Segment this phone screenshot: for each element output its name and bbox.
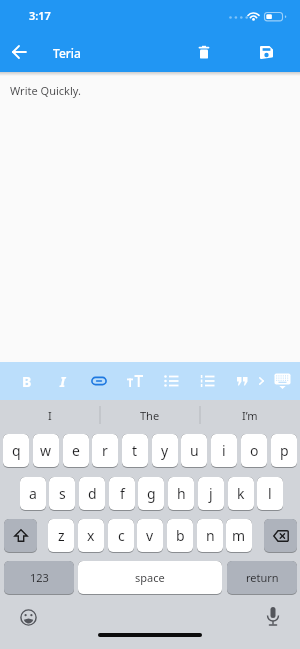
button[interactable]: k bbox=[228, 477, 254, 511]
button[interactable] bbox=[81, 362, 117, 400]
button[interactable] bbox=[12, 601, 44, 633]
button[interactable]: l bbox=[257, 477, 283, 511]
button[interactable]: e bbox=[63, 434, 89, 468]
staticText: f bbox=[120, 484, 125, 503]
button[interactable]: u bbox=[181, 434, 207, 468]
button[interactable]: space bbox=[78, 561, 222, 595]
button[interactable] bbox=[250, 36, 282, 68]
staticText: d bbox=[88, 484, 97, 503]
button[interactable]: q bbox=[3, 434, 29, 468]
button[interactable] bbox=[266, 362, 298, 400]
button[interactable]: r bbox=[92, 434, 118, 468]
button[interactable]: I bbox=[45, 362, 81, 400]
staticText: l bbox=[268, 484, 272, 503]
button[interactable]: d bbox=[79, 477, 105, 511]
button[interactable]: a bbox=[20, 477, 46, 511]
staticText: space bbox=[135, 570, 165, 585]
button[interactable]: g bbox=[138, 477, 164, 511]
staticText: return bbox=[246, 570, 279, 585]
button[interactable] bbox=[264, 519, 297, 553]
button[interactable]: s bbox=[49, 477, 75, 511]
button[interactable] bbox=[189, 362, 225, 400]
button[interactable]: n bbox=[197, 519, 223, 553]
button[interactable]: o bbox=[241, 434, 267, 468]
staticText: a bbox=[29, 484, 37, 503]
staticText: m bbox=[232, 526, 246, 545]
button[interactable] bbox=[257, 601, 289, 633]
button[interactable]: f bbox=[109, 477, 135, 511]
button[interactable]: I bbox=[0, 400, 100, 430]
button[interactable]: return bbox=[227, 561, 297, 595]
staticText: 123 bbox=[30, 570, 49, 585]
button[interactable]: b bbox=[167, 519, 193, 553]
button[interactable]: i bbox=[211, 434, 237, 468]
button[interactable]: m bbox=[226, 519, 252, 553]
button[interactable]: v bbox=[137, 519, 163, 553]
staticText: e bbox=[72, 441, 80, 460]
staticText: h bbox=[177, 484, 186, 503]
button[interactable]: z bbox=[48, 519, 74, 553]
staticText: The bbox=[140, 408, 160, 423]
staticText: i bbox=[222, 441, 226, 460]
staticText: j bbox=[209, 484, 213, 503]
staticText: n bbox=[206, 526, 215, 545]
staticText: t bbox=[132, 441, 138, 460]
staticText: b bbox=[176, 526, 185, 545]
button[interactable]: B bbox=[9, 362, 45, 400]
staticText: w bbox=[40, 441, 52, 460]
staticText: q bbox=[12, 441, 21, 460]
staticText: c bbox=[118, 526, 125, 545]
staticText: I bbox=[48, 408, 52, 423]
staticText: 3:17 bbox=[29, 8, 51, 23]
button[interactable]: p bbox=[271, 434, 297, 468]
button[interactable] bbox=[188, 36, 220, 68]
button[interactable] bbox=[227, 362, 257, 400]
button[interactable]: h bbox=[168, 477, 194, 511]
staticText: y bbox=[161, 441, 169, 460]
staticText: Teria bbox=[53, 45, 81, 61]
staticText: s bbox=[59, 484, 66, 503]
button[interactable]: I’m bbox=[200, 400, 300, 430]
button[interactable]: The bbox=[100, 400, 200, 430]
staticText: k bbox=[237, 484, 245, 503]
staticText: g bbox=[147, 484, 156, 503]
button[interactable] bbox=[153, 362, 189, 400]
button[interactable]: x bbox=[78, 519, 104, 553]
staticText: x bbox=[87, 526, 95, 545]
staticText: I bbox=[60, 372, 66, 391]
button[interactable]: w bbox=[33, 434, 59, 468]
button[interactable] bbox=[4, 36, 36, 68]
staticText: p bbox=[280, 441, 289, 460]
staticText: v bbox=[146, 526, 154, 545]
staticText: r bbox=[102, 441, 108, 460]
button[interactable]: 123 bbox=[4, 561, 74, 595]
staticText: I’m bbox=[242, 408, 258, 423]
button[interactable] bbox=[117, 362, 153, 400]
staticText: u bbox=[190, 441, 199, 460]
button[interactable] bbox=[254, 362, 268, 400]
button[interactable] bbox=[4, 519, 37, 553]
button[interactable]: j bbox=[198, 477, 224, 511]
button[interactable]: y bbox=[152, 434, 178, 468]
button[interactable]: c bbox=[108, 519, 134, 553]
staticText: B bbox=[22, 372, 32, 391]
staticText: o bbox=[250, 441, 259, 460]
staticText: Write Quickly. bbox=[10, 83, 81, 98]
staticText: z bbox=[58, 526, 65, 545]
button[interactable]: t bbox=[122, 434, 148, 468]
